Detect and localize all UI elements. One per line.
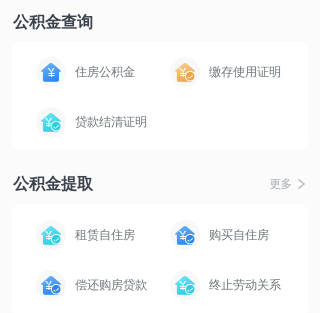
button[interactable]: 终止劳动关系 [12,260,281,310]
staticText: 租赁自住房 [75,227,135,243]
button[interactable]: 更多 [260,172,308,196]
staticText: 缴存使用证明 [209,64,281,80]
staticText: 购买自住房 [209,227,269,243]
button[interactable]: 贷款结清证明 [12,97,147,147]
staticText: 终止劳动关系 [209,277,281,293]
button[interactable]: 租赁自住房 [12,210,135,260]
staticText: 住房公积金 [75,64,135,80]
staticText: 更多 [269,177,291,191]
staticText: 偿还购房贷款 [75,277,147,293]
staticText: 公积金查询 [13,12,93,32]
staticText: 公积金提取 [13,174,93,194]
button[interactable]: 缴存使用证明 [12,47,281,97]
button[interactable]: 住房公积金 [12,47,135,97]
button[interactable]: 购买自住房 [12,210,269,260]
button[interactable]: 偿还购房贷款 [12,260,147,310]
staticText: 贷款结清证明 [75,114,147,130]
